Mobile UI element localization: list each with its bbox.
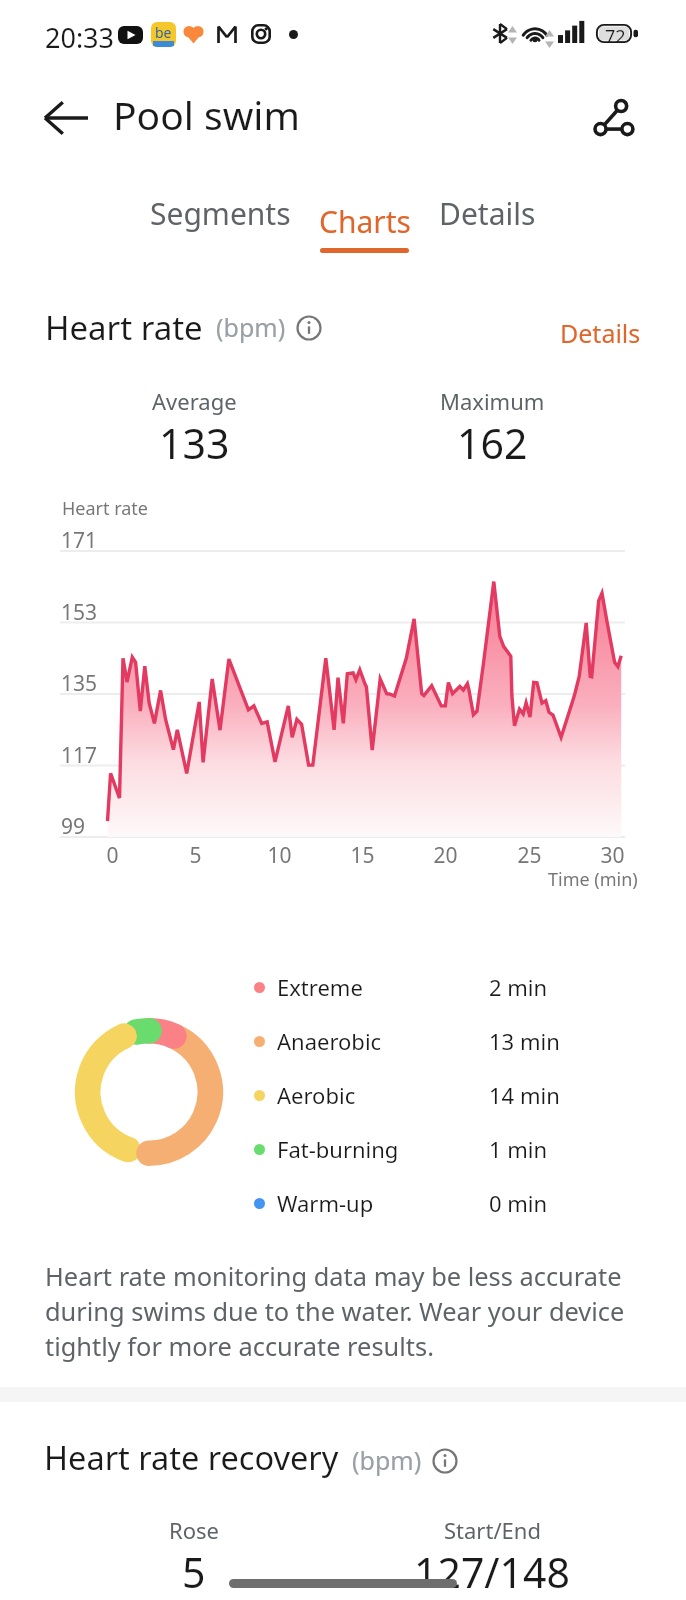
staticText: Fat-burning bbox=[277, 1134, 399, 1164]
staticText: 0 bbox=[106, 841, 119, 870]
staticText: Extreme bbox=[277, 972, 363, 1002]
staticText: Average bbox=[152, 386, 237, 416]
staticText: Heart rate monitoring data may be less a… bbox=[45, 1259, 641, 1364]
staticText: Maximum bbox=[440, 386, 545, 416]
staticText: (bpm) bbox=[216, 310, 286, 344]
button[interactable]: Details bbox=[545, 308, 655, 358]
staticText: 13 min bbox=[489, 1026, 560, 1056]
staticText: Details bbox=[560, 316, 641, 350]
staticText: 1 min bbox=[489, 1134, 548, 1164]
button[interactable]: Extreme bbox=[246, 960, 566, 1014]
staticText: Heart rate bbox=[45, 305, 203, 350]
staticText: 133 bbox=[159, 415, 230, 471]
staticText: 20:33 bbox=[45, 19, 115, 56]
staticText: 25 bbox=[517, 841, 542, 870]
staticText: Aerobic bbox=[277, 1080, 356, 1110]
button[interactable]: Aerobic bbox=[246, 1068, 566, 1122]
staticText: 14 min bbox=[489, 1080, 560, 1110]
staticText: Start/End bbox=[444, 1515, 541, 1545]
staticText: 5 bbox=[182, 1544, 206, 1600]
button[interactable]: Share bbox=[584, 90, 642, 148]
staticText: 171 bbox=[61, 526, 98, 555]
staticText: be bbox=[155, 23, 172, 42]
button[interactable]: Segments bbox=[135, 189, 305, 237]
staticText: 153 bbox=[61, 598, 98, 627]
staticText: 10 bbox=[267, 841, 292, 870]
staticText: 30 bbox=[600, 841, 625, 870]
staticText: Rose bbox=[169, 1515, 219, 1545]
button[interactable]: Anaerobic bbox=[246, 1014, 566, 1068]
staticText: 2 min bbox=[489, 972, 548, 1002]
staticText: Pool swim bbox=[113, 88, 300, 141]
button[interactable]: Fat-burning bbox=[246, 1122, 566, 1176]
button[interactable]: Charts bbox=[305, 189, 424, 257]
staticText: Time (min) bbox=[548, 867, 638, 892]
staticText: Warm-up bbox=[277, 1188, 374, 1218]
staticText: 99 bbox=[61, 812, 86, 841]
button[interactable]: Back bbox=[34, 92, 96, 144]
staticText: 15 bbox=[350, 841, 375, 870]
staticText: Segments bbox=[150, 193, 291, 234]
button[interactable]: Warm-up bbox=[246, 1176, 566, 1230]
staticText: 20 bbox=[433, 841, 458, 870]
staticText: 0 min bbox=[489, 1188, 548, 1218]
staticText: 127/148 bbox=[414, 1544, 570, 1600]
button[interactable]: Details bbox=[424, 189, 551, 237]
staticText: (bpm) bbox=[352, 1443, 422, 1477]
staticText: Details bbox=[439, 193, 536, 234]
staticText: Charts bbox=[319, 201, 411, 242]
button[interactable]: Info bbox=[294, 313, 324, 343]
staticText: 162 bbox=[457, 415, 528, 471]
staticText: 72 bbox=[605, 24, 626, 43]
staticText: Heart rate bbox=[62, 496, 149, 521]
button[interactable]: Info bbox=[430, 1446, 460, 1476]
staticText: Anaerobic bbox=[277, 1026, 382, 1056]
staticText: 117 bbox=[61, 741, 98, 770]
staticText: 135 bbox=[61, 669, 98, 698]
staticText: Heart rate recovery bbox=[44, 1435, 339, 1479]
staticText: 5 bbox=[189, 841, 202, 870]
